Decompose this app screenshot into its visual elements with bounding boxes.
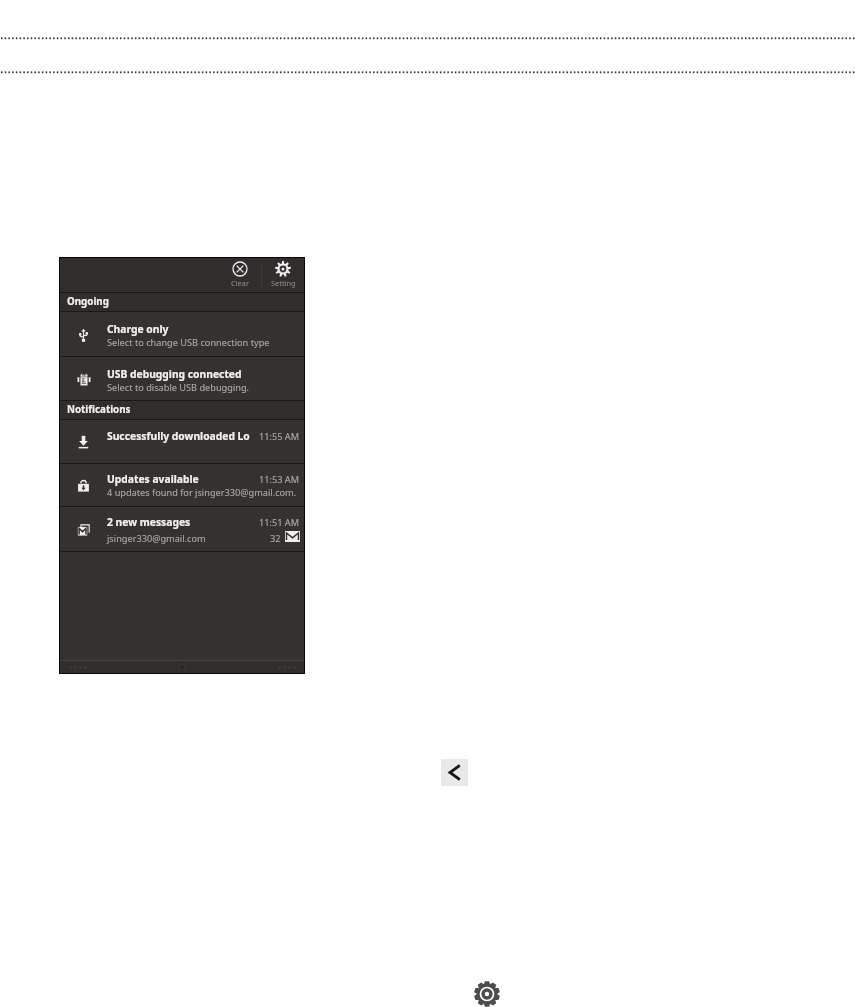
button[interactable]: Charge only [60,312,304,356]
button[interactable]: USB debugging connected [60,357,304,400]
staticText: 4 updates found for jsinger330@gmail.com… [107,486,304,499]
staticText: 32 [270,532,281,545]
button[interactable]: Successfully downloaded Lo [60,420,304,463]
staticText: USB debugging connected [107,367,304,381]
staticText: Clear [231,278,249,288]
button[interactable]: Updates available [60,464,304,506]
staticText: Ongoing [67,295,109,308]
staticText: Charge only [107,322,304,336]
button[interactable]: Back [441,759,468,786]
staticText: Notifications [67,403,131,416]
button[interactable]: Settings [474,981,500,1007]
button[interactable]: Setting [262,258,304,291]
staticText: Select to disable USB debugging. [107,381,304,394]
button[interactable]: 2 new messages [60,507,304,551]
staticText: Setting [271,278,296,288]
staticText: 11:53 AM [259,473,300,486]
button[interactable]: Clear [219,258,261,291]
staticText: 11:51 AM [259,516,300,529]
staticText: 2 new messages [107,515,304,529]
staticText: jsinger330@gmail.com [107,532,304,545]
staticText: Select to change USB connection type [107,336,304,349]
staticText: Successfully downloaded Lo [107,429,304,443]
staticText: 11:55 AM [259,430,300,443]
staticText: Updates available [107,472,304,486]
